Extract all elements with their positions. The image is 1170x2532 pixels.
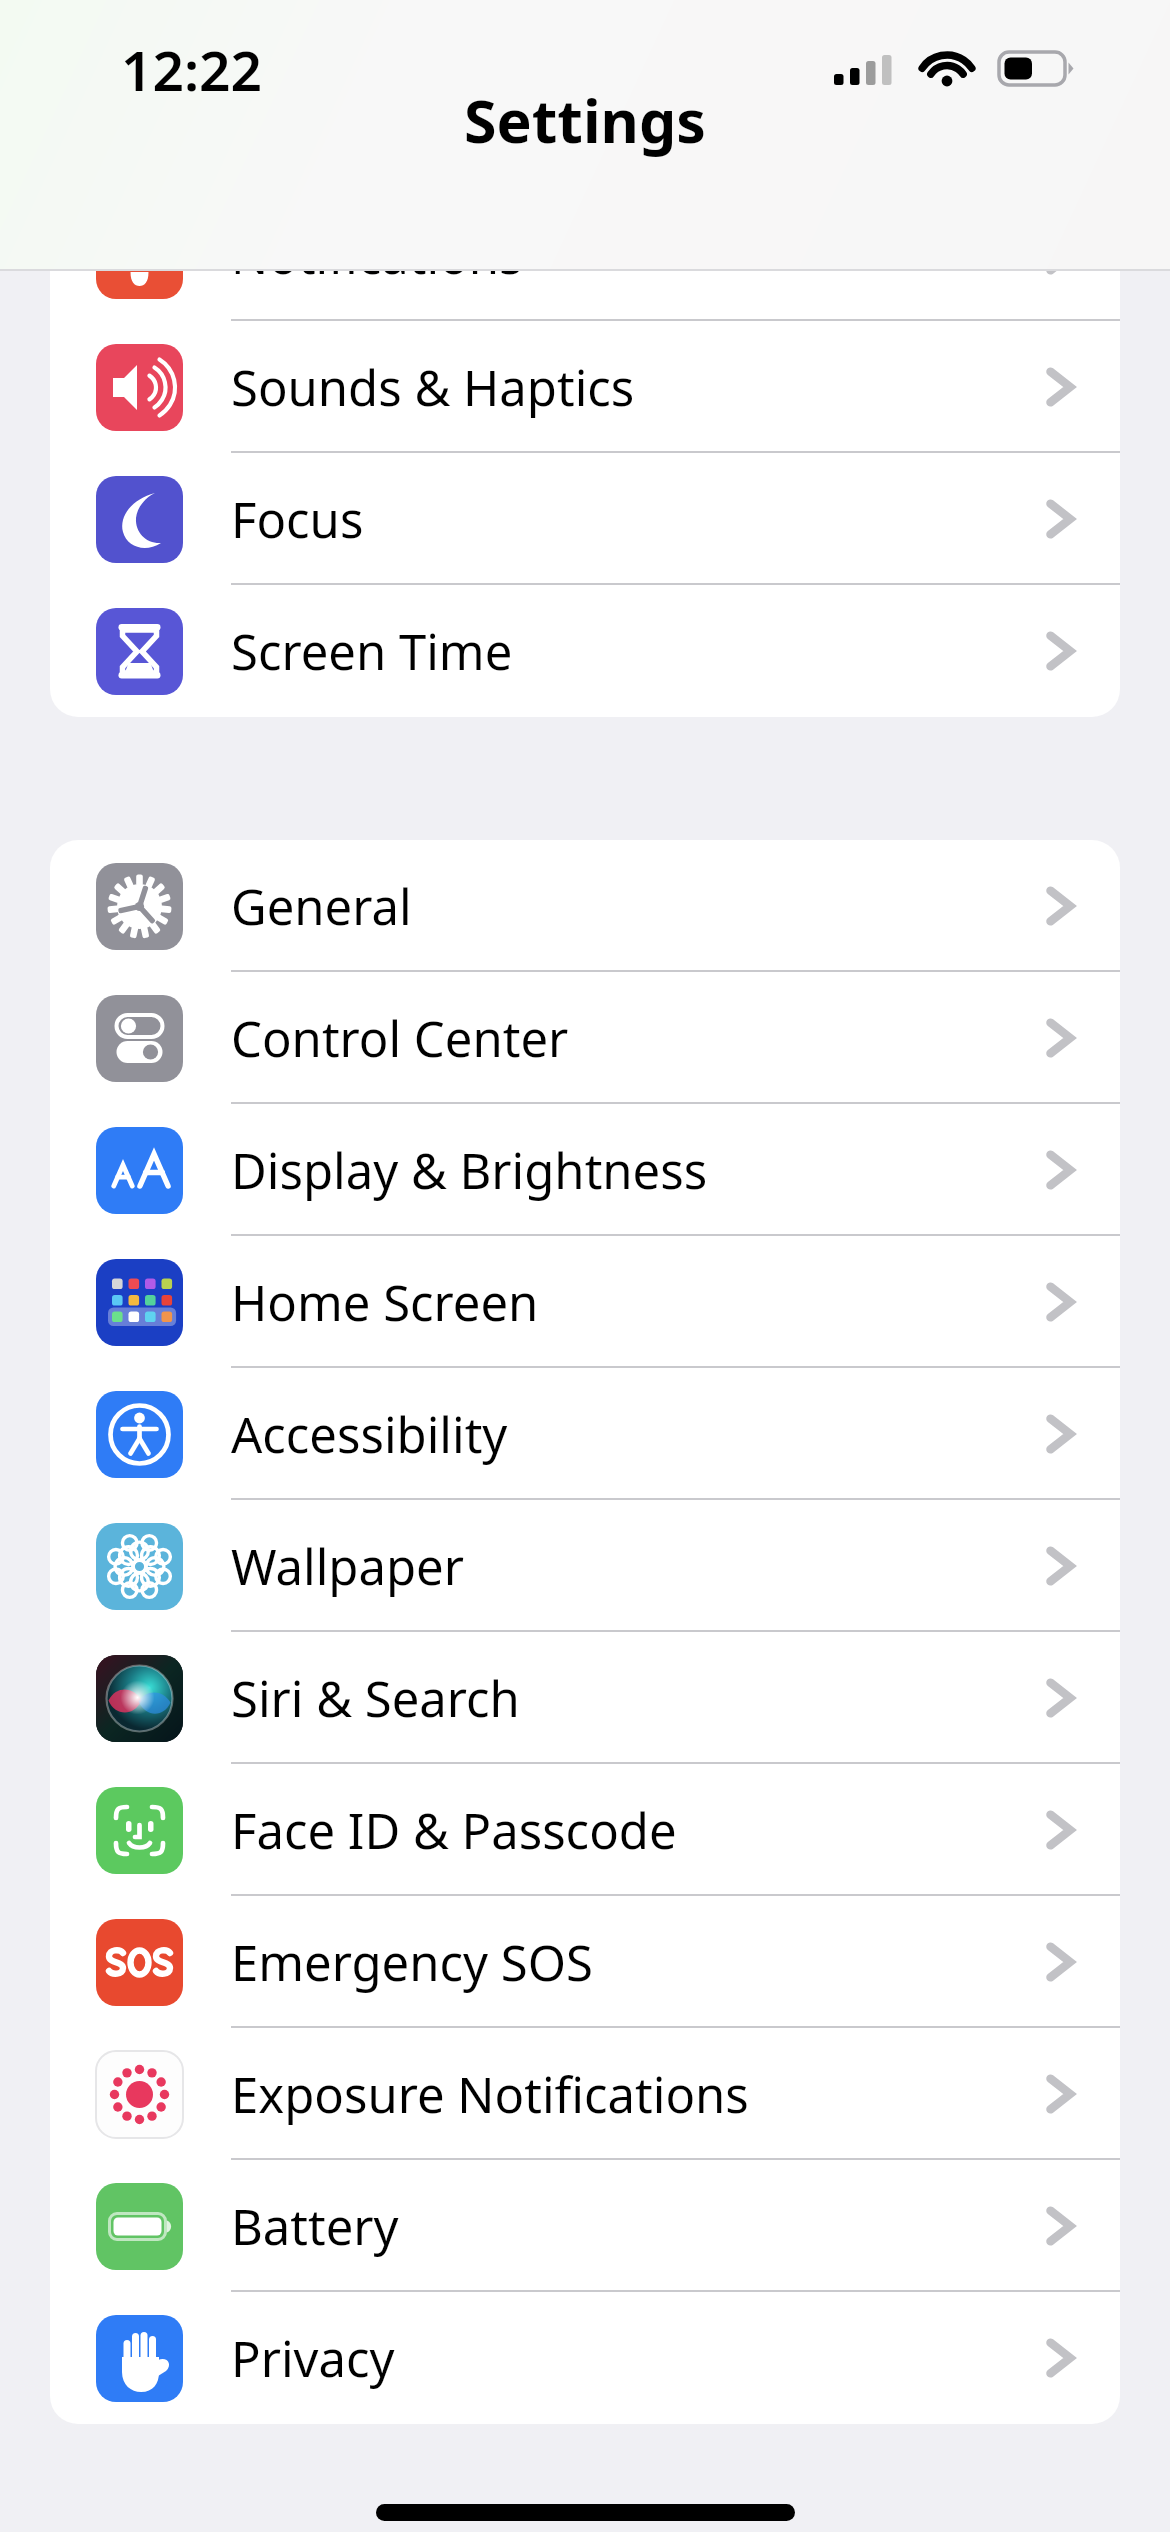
staticText: Siri & Search [231, 1665, 520, 1732]
other: Open Face ID & Passcode [1046, 1806, 1074, 1854]
button[interactable]: Home Screen [50, 1236, 1120, 1368]
button[interactable]: Accessibility [50, 1368, 1120, 1500]
button[interactable]: Focus [50, 453, 1120, 585]
staticText: Sounds & Haptics [231, 354, 635, 421]
button[interactable]: Privacy [50, 2292, 1120, 2424]
other: Open Display & Brightness [1046, 1146, 1074, 1194]
staticText: Notifications [231, 222, 523, 289]
other: Open General [1046, 882, 1074, 930]
button[interactable]: Siri & Search [50, 1632, 1120, 1764]
other: Open Siri & Search [1046, 1674, 1074, 1722]
other: Open Control Center [1046, 1014, 1074, 1062]
other: Open Accessibility [1046, 1410, 1074, 1458]
button[interactable]: Wallpaper [50, 1500, 1120, 1632]
other: Open Emergency SOS [1046, 1938, 1074, 1986]
staticText: Home Screen [231, 1269, 539, 1336]
other: Open Screen Time [1046, 627, 1074, 675]
staticText: Focus [231, 486, 364, 553]
button[interactable]: Display & Brightness [50, 1104, 1120, 1236]
other: Open Privacy [1046, 2334, 1074, 2382]
other: Open Exposure Notifications [1046, 2070, 1074, 2118]
staticText: Screen Time [231, 618, 513, 685]
staticText: Control Center [231, 1005, 569, 1072]
other: Open Battery [1046, 2202, 1074, 2250]
staticText: 12:22 [121, 32, 263, 107]
staticText: Battery [231, 2193, 399, 2260]
button[interactable]: Notifications [50, 189, 1120, 321]
staticText: General [231, 873, 412, 940]
button[interactable]: Screen Time [50, 585, 1120, 717]
staticText: Wallpaper [231, 1533, 464, 1600]
other: Open Focus [1046, 495, 1074, 543]
staticText: Display & Brightness [231, 1137, 708, 1204]
staticText: Emergency SOS [231, 1929, 593, 1996]
staticText: Accessibility [231, 1401, 508, 1468]
button[interactable]: Emergency SOS [50, 1896, 1120, 2028]
button[interactable]: General [50, 840, 1120, 972]
button[interactable]: Face ID & Passcode [50, 1764, 1120, 1896]
button[interactable]: Sounds & Haptics [50, 321, 1120, 453]
other: Open Home Screen [1046, 1278, 1074, 1326]
button[interactable]: Control Center [50, 972, 1120, 1104]
staticText: Exposure Notifications [231, 2061, 749, 2128]
other: Open Notifications [1046, 231, 1074, 279]
staticText: Privacy [231, 2325, 395, 2392]
other: Open Wallpaper [1046, 1542, 1074, 1590]
staticText: Settings [464, 80, 706, 160]
other: Open Sounds & Haptics [1046, 363, 1074, 411]
staticText: Face ID & Passcode [231, 1797, 677, 1864]
button[interactable]: Exposure Notifications [50, 2028, 1120, 2160]
button[interactable]: Battery [50, 2160, 1120, 2292]
